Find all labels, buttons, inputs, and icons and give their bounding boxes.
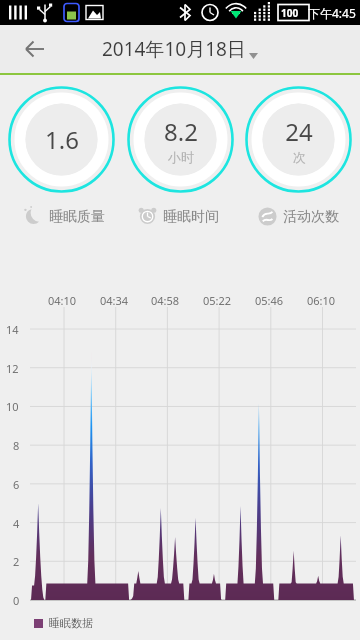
staticText: 睡眠质量: [49, 208, 105, 226]
staticText: 8.2: [164, 115, 198, 148]
staticText: 14: [6, 322, 19, 337]
staticText: 0: [13, 593, 20, 608]
staticText: 2014年10月18日: [102, 36, 246, 62]
staticText: 6: [13, 477, 20, 492]
staticText: 次: [293, 149, 306, 165]
button[interactable]: Back: [16, 30, 54, 68]
staticText: 24: [285, 115, 313, 148]
staticText: 睡眠数据: [49, 616, 93, 630]
button[interactable]: 1.6: [8, 86, 115, 193]
staticText: 下午4:45: [308, 5, 356, 21]
staticText: 04:58: [151, 293, 180, 308]
staticText: 活动次数: [283, 208, 339, 226]
button[interactable]: 24: [245, 86, 352, 193]
staticText: 05:46: [255, 293, 284, 308]
button[interactable]: 睡眠数据: [34, 616, 93, 630]
staticText: 10: [6, 399, 19, 414]
staticText: 12: [6, 361, 19, 376]
staticText: 4: [13, 516, 20, 531]
staticText: 100: [281, 6, 299, 20]
staticText: 睡眠时间: [163, 208, 219, 226]
button[interactable]: 睡眠时间: [138, 207, 240, 226]
button[interactable]: 8.2: [127, 86, 234, 193]
staticText: 小时: [168, 149, 194, 165]
staticText: 8: [13, 438, 20, 453]
staticText: 04:10: [48, 293, 77, 308]
staticText: 04:34: [100, 293, 129, 308]
staticText: 1.6: [45, 123, 79, 156]
staticText: 05:22: [203, 293, 232, 308]
staticText: 06:10: [307, 293, 336, 308]
staticText: 2: [13, 554, 20, 569]
button[interactable]: 活动次数: [258, 207, 360, 226]
button[interactable]: 2014年10月18日: [102, 36, 258, 62]
button[interactable]: 睡眠质量: [24, 207, 120, 226]
